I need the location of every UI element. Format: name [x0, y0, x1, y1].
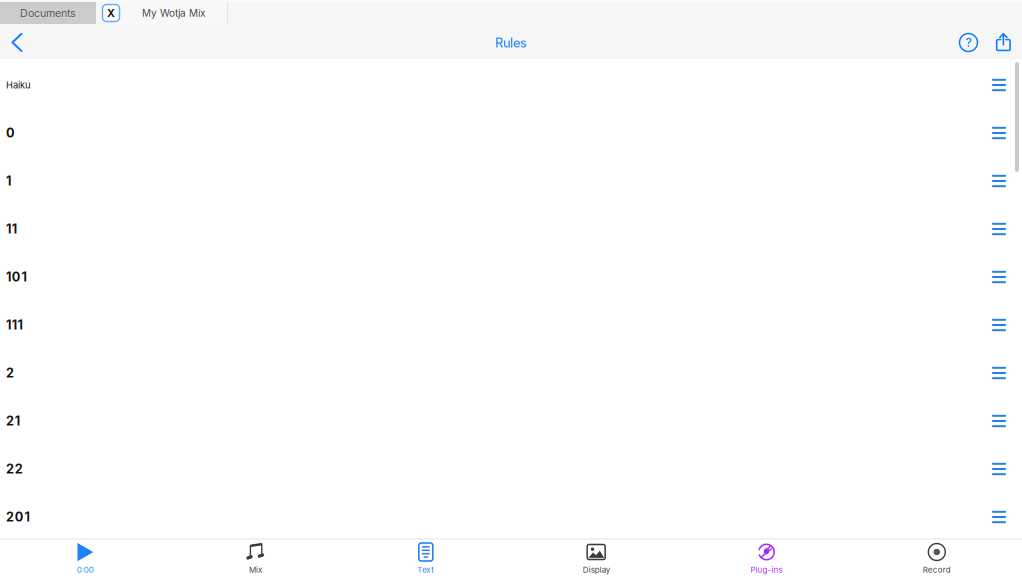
- staticText: Record: [923, 565, 951, 575]
- button[interactable]: 201: [0, 493, 1022, 541]
- button[interactable]: Text: [341, 540, 511, 578]
- button[interactable]: Haiku: [0, 61, 1022, 109]
- button[interactable]: 101: [0, 253, 1022, 301]
- staticText: X: [107, 6, 115, 19]
- staticText: Haiku: [6, 79, 31, 91]
- staticText: 101: [6, 269, 27, 285]
- button[interactable]: Display: [511, 540, 681, 578]
- button[interactable]: 11: [0, 205, 1022, 253]
- staticText: 201: [6, 509, 30, 525]
- button[interactable]: Documents: [0, 2, 96, 24]
- staticText: Plug-ins: [750, 565, 782, 575]
- staticText: My Wotja Mix: [142, 7, 205, 19]
- staticText: Text: [417, 565, 434, 575]
- staticText: Documents: [20, 6, 76, 19]
- button[interactable]: 22: [0, 445, 1022, 493]
- staticText: 0:00: [77, 565, 94, 575]
- staticText: 0: [6, 125, 15, 141]
- staticText: 11: [6, 221, 17, 237]
- button[interactable]: 21: [0, 397, 1022, 445]
- staticText: 1: [6, 173, 11, 189]
- staticText: Display: [583, 565, 610, 575]
- staticText: Rules: [495, 35, 527, 51]
- staticText: 2: [6, 365, 14, 381]
- staticText: 21: [6, 413, 20, 429]
- button[interactable]: 0:00: [0, 540, 170, 578]
- button[interactable]: 2: [0, 349, 1022, 397]
- staticText: 22: [6, 461, 23, 477]
- staticText: 111: [6, 317, 23, 333]
- button[interactable]: Plug-ins: [681, 540, 852, 578]
- staticText: ?: [965, 35, 971, 50]
- button[interactable]: 0: [0, 109, 1022, 157]
- button[interactable]: Record: [852, 540, 1022, 578]
- button[interactable]: Share: [986, 24, 1021, 59]
- button[interactable]: Mix: [170, 540, 341, 578]
- button[interactable]: 1: [0, 157, 1022, 205]
- button[interactable]: 111: [0, 301, 1022, 349]
- staticText: Mix: [249, 565, 262, 575]
- button[interactable]: Close document: [101, 2, 121, 24]
- button[interactable]: Back: [0, 24, 34, 59]
- button[interactable]: Help: [951, 24, 986, 59]
